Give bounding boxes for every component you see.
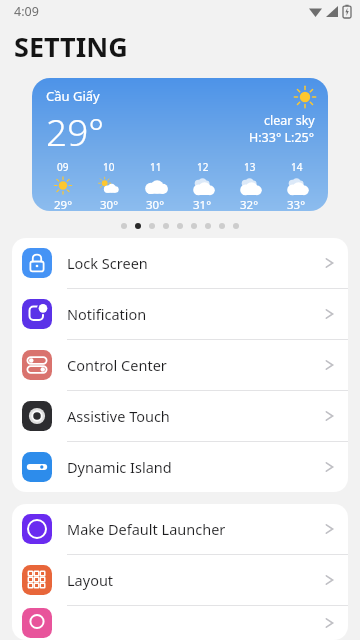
button[interactable]: Dynamic Island	[12, 442, 348, 492]
staticText: clear sky	[264, 112, 315, 129]
staticText: Layout	[67, 570, 325, 590]
staticText: Dynamic Island	[67, 457, 325, 477]
button[interactable]: Layout	[12, 555, 348, 606]
staticText: 10	[103, 160, 115, 174]
staticText: 29°	[54, 197, 73, 211]
button[interactable]: Cầu Giấy	[32, 78, 328, 211]
staticText: 33°	[287, 197, 306, 211]
staticText: 12	[197, 160, 209, 174]
button[interactable]: Control Center	[12, 340, 348, 391]
staticText: 13	[244, 160, 256, 174]
button[interactable]	[12, 606, 348, 640]
staticText: Control Center	[67, 355, 325, 375]
staticText: 30°	[146, 197, 165, 211]
staticText: Lock Screen	[67, 253, 325, 273]
staticText: Notification	[67, 304, 325, 324]
button[interactable]: Lock Screen	[12, 238, 348, 289]
staticText: Make Default Launcher	[67, 519, 325, 539]
staticText: 09	[57, 160, 69, 174]
staticText: Assistive Touch	[67, 406, 325, 426]
staticText: 4:09	[14, 3, 39, 20]
button[interactable]: Assistive Touch	[12, 391, 348, 442]
button[interactable]: Notification	[12, 289, 348, 340]
staticText: 14	[291, 160, 303, 174]
button[interactable]: Make Default Launcher	[12, 504, 348, 555]
staticText: SETTING	[14, 28, 128, 65]
staticText: 31°	[193, 197, 212, 211]
staticText: H:33° L:25°	[249, 129, 315, 146]
staticText: 29°	[46, 106, 105, 156]
staticText: 32°	[240, 197, 259, 211]
staticText: 30°	[100, 197, 119, 211]
staticText: Cầu Giấy	[46, 87, 100, 105]
staticText: 11	[150, 160, 162, 174]
